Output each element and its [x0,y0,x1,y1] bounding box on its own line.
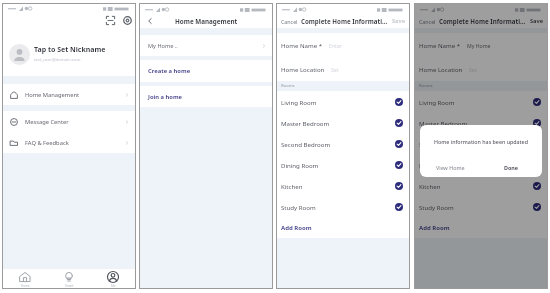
staticText: Second Bedroom [419,140,469,148]
button[interactable]: Cancel [419,18,436,25]
staticText: Home information has been updated [434,138,528,145]
button[interactable]: Master Bedroom [419,112,541,133]
staticText: Save [530,17,543,25]
button[interactable]: Study Room [419,196,541,217]
button[interactable]: Add Room [281,217,409,238]
staticText: Home Name * [419,41,461,49]
staticText: Home [21,284,30,288]
button[interactable]: FAQ & Feedback [10,132,129,153]
staticText: Complete Home Informati... [439,17,526,25]
staticText: Message Center [25,118,69,126]
button[interactable]: Create a home [148,60,272,82]
staticText: Home Name * [281,41,323,49]
staticText: View Home [436,164,465,171]
staticText: Add Room [419,224,450,232]
button[interactable]: Save [392,17,405,25]
button[interactable]: Save [530,17,543,25]
staticText: Master Bedroom [281,119,330,127]
button[interactable]: View Home [420,158,481,177]
staticText: Cancel [281,18,298,25]
staticText: Complete Home Informati... [301,17,388,25]
staticText: Kitchen [419,182,441,190]
staticText: Living Room [281,98,317,106]
button[interactable]: Kitchen [281,175,403,196]
staticText: FAQ & Feedback [25,139,69,147]
staticText: Study Room [419,203,454,211]
button[interactable]: Second Bedroom [281,133,403,154]
staticText: Dining Room [419,161,457,169]
staticText: Smart [65,284,74,288]
staticText: Study Room [281,203,316,211]
button[interactable]: Kitchen [419,175,541,196]
button[interactable]: Home Name * [281,33,403,57]
button[interactable]: Scan QR code [103,13,117,27]
button[interactable]: Dining Room [419,154,541,175]
staticText: Kitchen [281,182,303,190]
staticText: Home Location [281,65,325,73]
staticText: test_user@domain.com [34,57,81,63]
button[interactable]: Dining Room [281,154,403,175]
button[interactable]: Home Name * [419,33,541,57]
staticText: Join a home [148,93,183,101]
staticText: My Home .. [148,42,178,50]
button[interactable]: Smart tab [47,269,91,288]
button[interactable]: Study Room [281,196,403,217]
staticText: Rooms [419,83,433,89]
button[interactable]: Second Bedroom [419,133,541,154]
staticText: My Home [467,42,491,49]
button[interactable]: Home tab [3,269,47,288]
button[interactable]: Master Bedroom [281,112,403,133]
staticText: Me [111,284,116,288]
staticText: Living Room [419,98,455,106]
staticText: Rooms [281,83,295,89]
button[interactable]: Home Location [281,57,403,81]
staticText: Dining Room [281,161,319,169]
staticText: Home Management [175,17,238,26]
staticText: Cancel [419,18,436,25]
staticText: Create a home [148,67,191,75]
button[interactable]: Living Room [419,91,541,112]
button[interactable]: Settings [120,13,134,27]
button[interactable]: Home Management [10,84,129,105]
staticText: Done [504,164,519,171]
staticText: Home Management [25,91,80,99]
staticText: Second Bedroom [281,140,331,148]
button[interactable]: Living Room [281,91,403,112]
button[interactable]: Me tab [91,269,135,288]
staticText: Add Room [281,224,312,232]
button[interactable]: Message Center [10,111,129,132]
staticText: Tap to Set Nickname [34,45,106,55]
staticText: Master Bedroom [419,119,468,127]
button[interactable]: My Home .. [148,35,266,56]
button[interactable]: Join a home [148,86,272,107]
button[interactable]: Done [481,158,542,177]
staticText: Set [469,66,477,73]
button[interactable]: Back [140,14,160,28]
staticText: Enter [329,42,343,49]
staticText: Home Location [419,65,463,73]
button[interactable]: Home Location [419,57,541,81]
button[interactable]: Add Room [419,217,547,238]
button[interactable]: Cancel [281,18,298,25]
staticText: Save [392,17,405,25]
button[interactable]: Tap to Set Nickname [9,42,135,66]
staticText: Set [331,66,339,73]
